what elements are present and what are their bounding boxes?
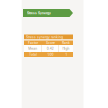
staticText: 0.42 — [47, 47, 54, 50]
staticText: Total — [29, 53, 37, 56]
button[interactable]: Stress Synergy — [23, 9, 73, 17]
staticText: High — [62, 47, 69, 50]
staticText: Stress synergy ranking — [26, 35, 63, 39]
staticText: Rank — [62, 41, 70, 45]
staticText: Factor — [28, 41, 38, 45]
staticText: 1.00 — [47, 53, 53, 56]
staticText: Score — [46, 41, 55, 45]
staticText: Mean — [28, 47, 37, 50]
staticText: Stress Synergy — [27, 11, 51, 15]
